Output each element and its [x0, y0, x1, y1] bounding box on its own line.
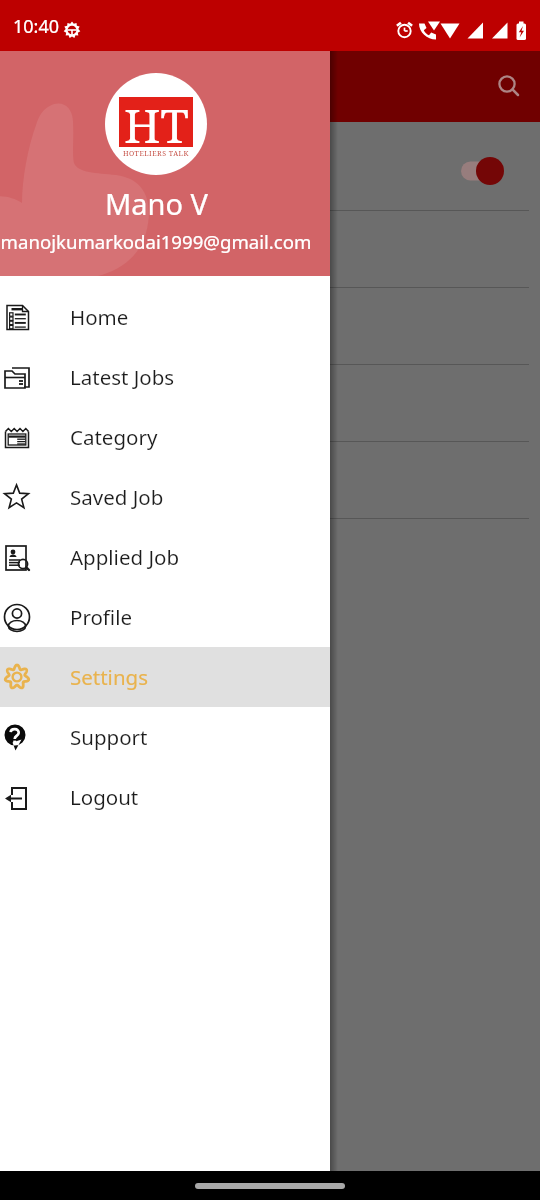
staticText: Saved Job: [70, 483, 164, 511]
staticText: HT: [124, 94, 189, 144]
button[interactable]: Category: [0, 407, 330, 467]
button[interactable]: [0, 211, 540, 287]
button[interactable]: [0, 442, 540, 518]
button[interactable]: Profile: [0, 587, 330, 647]
button[interactable]: Latest Jobs: [0, 347, 330, 407]
staticText: Settings: [70, 663, 149, 691]
button[interactable]: Notifications toggle: [452, 151, 512, 191]
staticText: Profile: [70, 603, 133, 631]
staticText: Support: [70, 723, 148, 751]
staticText: HOTELIERS TALK: [123, 149, 189, 159]
button[interactable]: Saved Job: [0, 467, 330, 527]
button[interactable]: Logout: [0, 767, 330, 827]
button[interactable]: Applied Job: [0, 527, 330, 587]
staticText: Applied Job: [70, 543, 179, 571]
button[interactable]: Home: [0, 287, 330, 347]
staticText: 10:40: [13, 14, 60, 39]
staticText: Home: [70, 303, 129, 331]
button[interactable]: Search: [483, 60, 531, 108]
staticText: manojkumarkodai1999@gmail.com: [0, 229, 321, 254]
button[interactable]: [0, 288, 540, 364]
staticText: Category: [70, 423, 158, 451]
button[interactable]: [0, 365, 540, 441]
button[interactable]: Settings: [0, 647, 330, 707]
staticText: Logout: [70, 783, 139, 811]
staticText: Mano V: [105, 184, 208, 223]
button[interactable]: Support: [0, 707, 330, 767]
staticText: Latest Jobs: [70, 363, 175, 391]
